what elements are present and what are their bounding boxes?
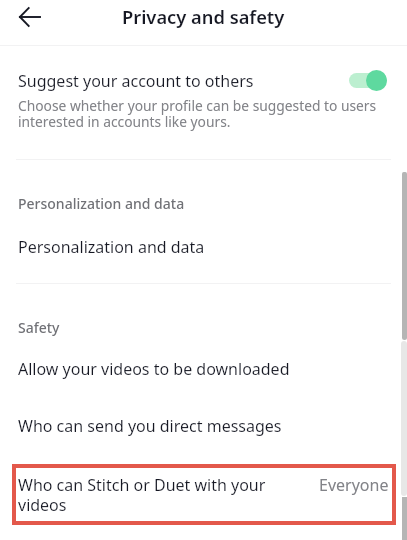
button[interactable]: Back (9, 0, 51, 34)
button[interactable]: Who can Stitch or Duet with your videos (12, 464, 396, 525)
button[interactable]: Personalization and data (0, 236, 407, 260)
staticText: Personalization and data (18, 194, 185, 213)
staticText: Who can Stitch or Duet with your videos (18, 474, 270, 515)
staticText: Who can send you direct messages (18, 415, 282, 437)
staticText: Choose whether your profile can be sugge… (18, 96, 384, 131)
button[interactable]: Who can send you direct messages (0, 415, 407, 439)
staticText: Everyone (319, 474, 389, 496)
staticText: Safety (18, 318, 60, 337)
button[interactable]: Allow your videos to be downloaded (0, 358, 407, 382)
staticText: Privacy and safety (122, 4, 285, 29)
staticText: Personalization and data (18, 236, 205, 258)
button[interactable]: Suggest your account to others (349, 70, 387, 91)
staticText: Allow your videos to be downloaded (18, 358, 290, 380)
staticText: Suggest your account to others (18, 70, 254, 92)
